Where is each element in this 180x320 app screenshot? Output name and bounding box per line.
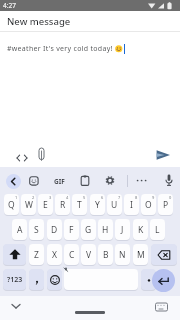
button[interactable]: GIF [50, 175, 68, 187]
button[interactable]: W [21, 194, 36, 215]
button[interactable]: U [107, 194, 122, 215]
button[interactable]: X [47, 244, 62, 265]
staticText: B [103, 249, 109, 261]
button[interactable]: N [115, 244, 130, 265]
button[interactable] [75, 311, 105, 314]
button[interactable]: H [98, 219, 113, 240]
staticText: T [77, 199, 82, 211]
button[interactable] [141, 269, 156, 290]
button[interactable]: Q [4, 194, 19, 215]
button[interactable]: M [133, 244, 148, 265]
staticText: 4:27 [3, 1, 16, 10]
button[interactable] [105, 175, 115, 186]
button[interactable] [14, 152, 30, 164]
staticText: D [51, 224, 58, 236]
staticText: S [34, 224, 39, 236]
staticText: I [130, 199, 133, 211]
button[interactable] [155, 149, 172, 162]
button[interactable] [47, 269, 62, 290]
staticText: 2 [32, 195, 35, 200]
button[interactable]: B [98, 244, 113, 265]
staticText: N [119, 249, 126, 261]
staticText: W [25, 199, 33, 211]
staticText: 6 [101, 195, 104, 200]
button[interactable] [64, 269, 138, 290]
button[interactable]: A [12, 219, 27, 240]
button[interactable]: G [81, 219, 96, 240]
button[interactable] [6, 174, 21, 189]
staticText: C [69, 249, 75, 261]
button[interactable] [136, 179, 148, 182]
button[interactable]: Z [29, 244, 44, 265]
staticText: H [102, 224, 109, 236]
staticText: New message [7, 15, 71, 28]
button[interactable] [151, 244, 177, 265]
button[interactable]: I [124, 194, 139, 215]
staticText: 3 [49, 195, 52, 200]
button[interactable]: R [55, 194, 70, 215]
button[interactable] [154, 301, 169, 312]
button[interactable] [80, 175, 90, 186]
button[interactable]: V [81, 244, 96, 265]
staticText: L [155, 224, 160, 236]
staticText: Y [95, 199, 100, 211]
staticText: E [43, 199, 48, 211]
staticText: U [111, 199, 118, 211]
staticText: K [138, 224, 144, 236]
button[interactable]: ?123 [3, 269, 26, 290]
button[interactable] [29, 269, 44, 290]
button[interactable] [37, 147, 46, 163]
button[interactable] [29, 176, 39, 186]
button[interactable] [164, 174, 174, 187]
button[interactable] [8, 300, 24, 312]
staticText: O [145, 199, 152, 211]
button[interactable]: E [38, 194, 53, 215]
button[interactable] [152, 269, 175, 292]
staticText: 9 [152, 195, 155, 200]
staticText: F [69, 224, 74, 236]
staticText: 5 [83, 195, 86, 200]
staticText: 1 [15, 195, 18, 200]
button[interactable]: L [150, 219, 165, 240]
staticText: X [52, 249, 57, 261]
staticText: Z [34, 249, 39, 261]
staticText: P [163, 199, 169, 211]
button[interactable]: K [133, 219, 148, 240]
staticText: 8 [135, 195, 138, 200]
button[interactable]: Y [90, 194, 105, 215]
staticText: Q [8, 199, 15, 211]
staticText: 4 [66, 195, 69, 200]
button[interactable]: J [115, 219, 130, 240]
button[interactable]: F [64, 219, 79, 240]
staticText: V [86, 249, 92, 261]
staticText: G [85, 224, 92, 236]
button[interactable]: C [64, 244, 79, 265]
staticText: GIF [54, 177, 65, 186]
staticText: ?123 [7, 275, 23, 285]
staticText: M [137, 249, 145, 261]
staticText: 7 [118, 195, 121, 200]
staticText: J [121, 224, 124, 236]
button[interactable]: S [29, 219, 44, 240]
staticText: #weather It's very cold today! [7, 44, 113, 54]
button[interactable]: O [141, 194, 156, 215]
button[interactable]: P [158, 194, 173, 215]
staticText: R [60, 199, 66, 211]
staticText: 0 [169, 195, 172, 200]
button[interactable] [3, 244, 26, 265]
staticText: A [17, 224, 23, 236]
button[interactable]: T [72, 194, 87, 215]
button[interactable]: D [47, 219, 62, 240]
